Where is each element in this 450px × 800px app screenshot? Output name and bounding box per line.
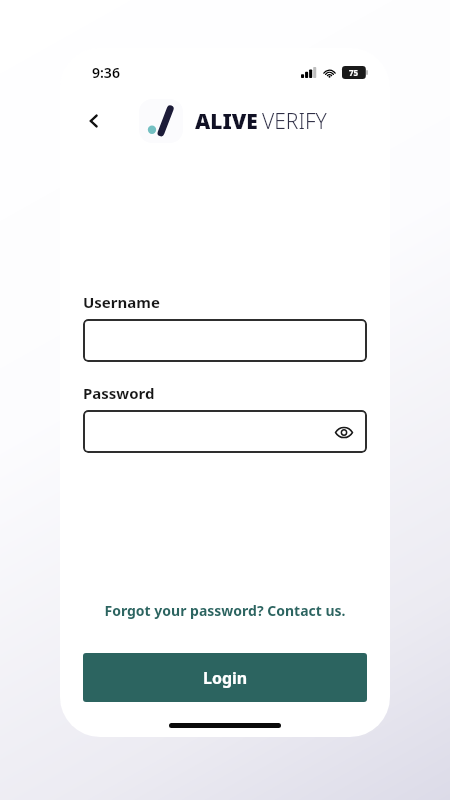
staticText: Password — [83, 383, 155, 403]
button[interactable]: Login — [83, 653, 367, 702]
staticText: 75 — [349, 67, 359, 78]
staticText: 9:36 — [92, 63, 120, 82]
button[interactable]: Back — [74, 101, 114, 141]
staticText: VERIFY — [262, 107, 327, 136]
button[interactable]: Show password — [331, 419, 357, 445]
button[interactable] — [83, 319, 367, 362]
button[interactable]: Forgot your password? Contact us. — [60, 597, 390, 624]
staticText: Username — [83, 292, 160, 312]
button[interactable]: Show password — [83, 410, 367, 453]
staticText: Forgot your password? Contact us. — [104, 601, 346, 620]
staticText: Login — [203, 667, 248, 689]
staticText: ALIVE — [195, 107, 258, 136]
